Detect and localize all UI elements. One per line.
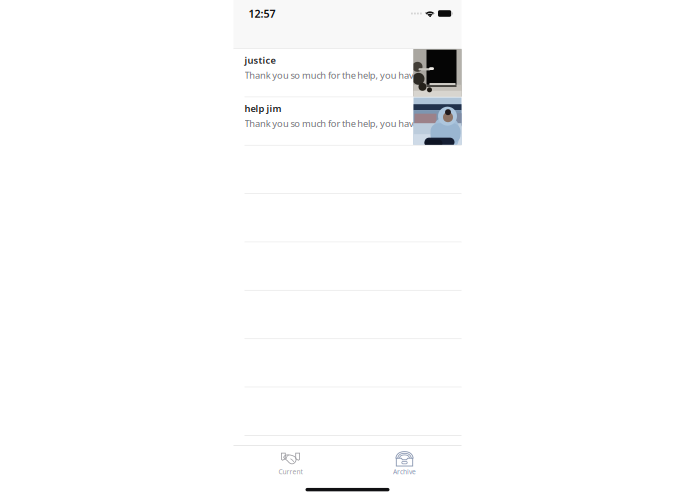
staticText: Thank you so much for the help, you have <box>244 69 419 81</box>
button[interactable]: Current <box>233 446 347 480</box>
staticText: justice <box>244 54 275 66</box>
button[interactable]: Archive <box>347 446 461 480</box>
staticText: 12:57 <box>248 6 275 21</box>
staticText: help jim <box>244 102 281 115</box>
staticText: Archive <box>393 467 416 476</box>
button[interactable]: help jim <box>233 97 461 145</box>
button[interactable]: justice <box>233 49 461 97</box>
staticText: Current <box>278 467 302 476</box>
staticText: Thank you so much for the help, you have <box>244 117 419 130</box>
